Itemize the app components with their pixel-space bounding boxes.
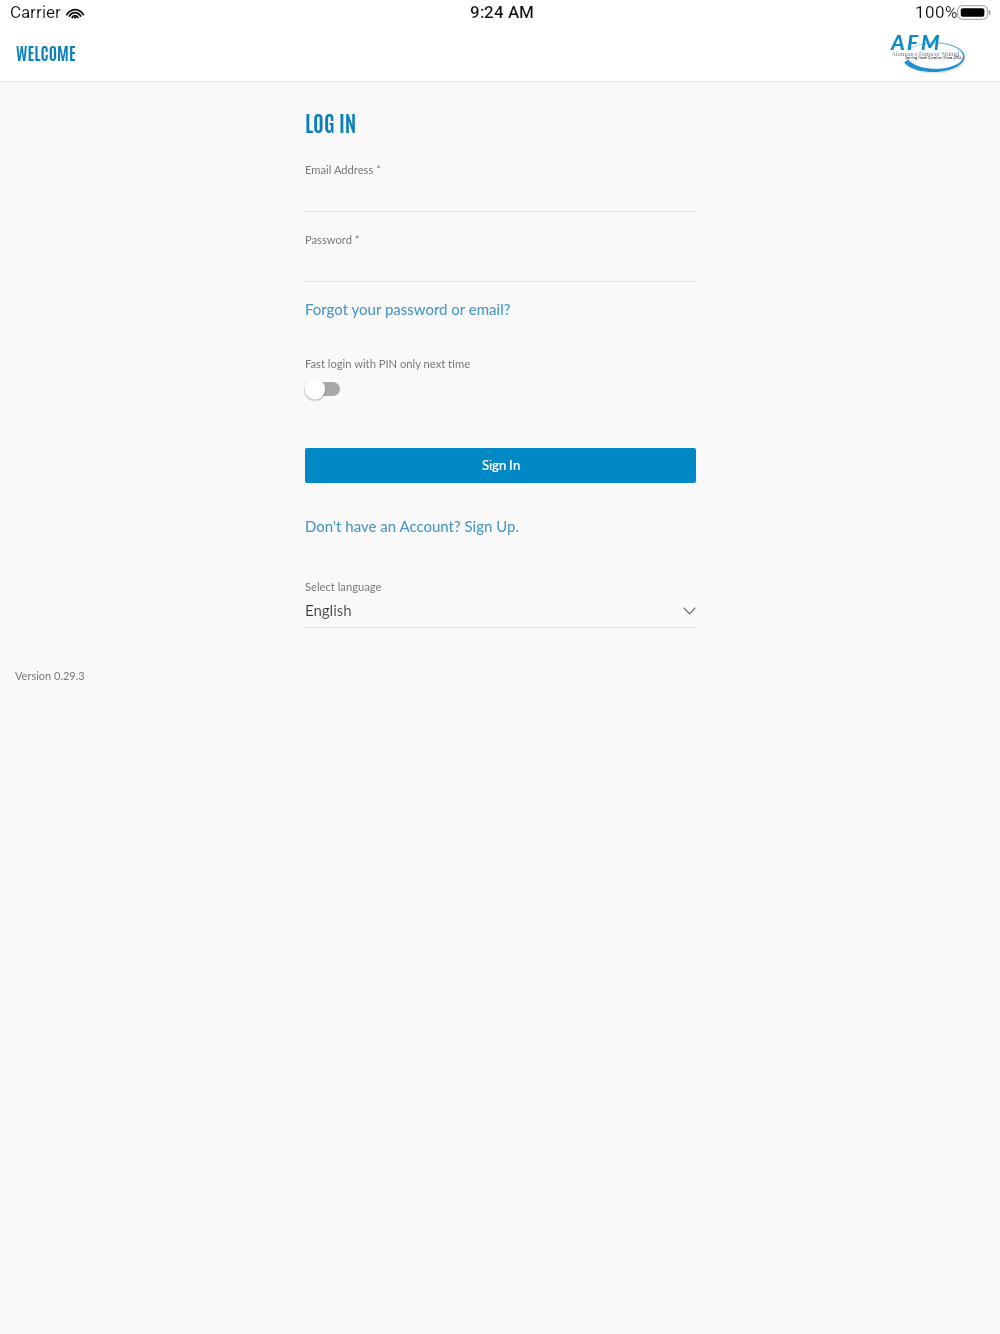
staticText: Email Address * [305, 163, 381, 176]
staticText: Version 0.29.3 [15, 669, 85, 682]
staticText: Password * [305, 233, 360, 246]
button[interactable] [305, 448, 696, 483]
button[interactable]: English [305, 601, 696, 627]
button[interactable]: Forgot your password or email? [305, 300, 511, 318]
other: Wi-Fi [65, 5, 85, 19]
staticText: English [305, 601, 352, 619]
staticText: Select language [305, 580, 382, 593]
button[interactable]: Password * [305, 230, 696, 282]
button[interactable]: Email Address * [305, 160, 696, 212]
button[interactable]: Fast login with PIN only next time [304, 377, 348, 401]
button[interactable]: Don't have an Account? Sign Up. [305, 517, 519, 535]
button[interactable]: LOG IN [305, 108, 357, 136]
button[interactable]: WELCOME [16, 41, 76, 63]
staticText: Fast login with PIN only next time [305, 357, 471, 370]
other: Battery 100 percent [957, 5, 991, 20]
